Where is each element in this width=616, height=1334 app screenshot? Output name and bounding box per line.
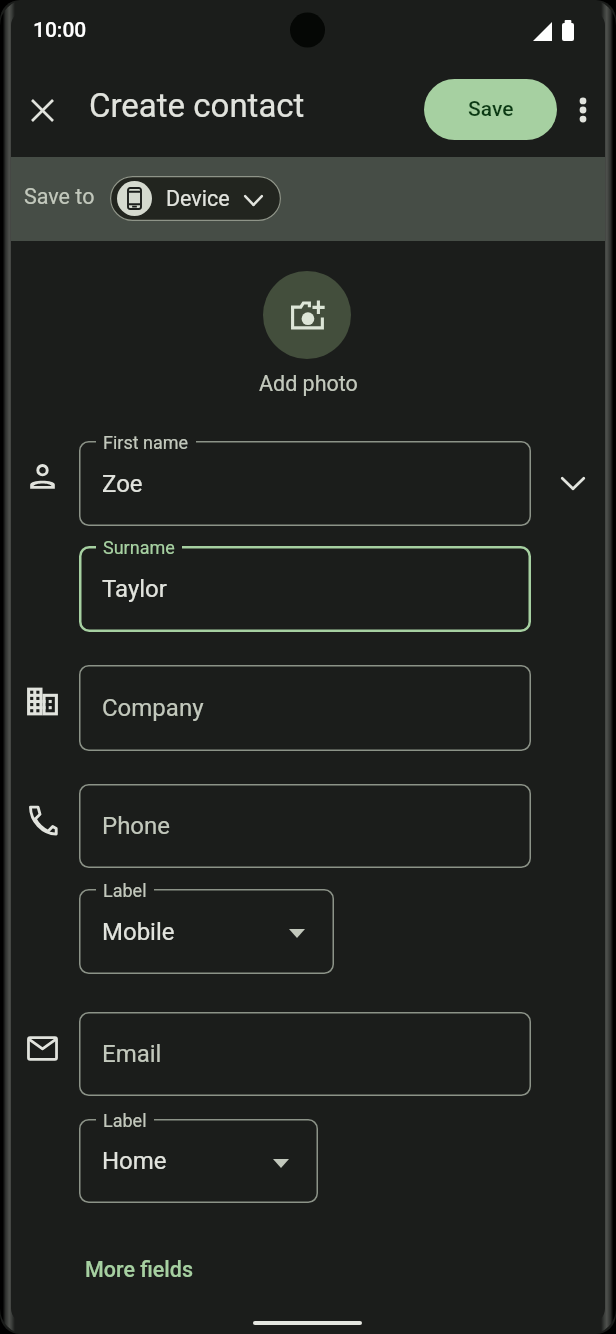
button[interactable]: Label [79, 889, 334, 974]
staticText: Mobile [102, 918, 175, 946]
button[interactable]: More options [559, 86, 607, 134]
staticText: Save to [24, 184, 95, 209]
staticText: Zoe [102, 470, 143, 498]
staticText: Home [102, 1147, 167, 1175]
staticText: Add photo [259, 371, 358, 396]
button[interactable]: Save [424, 79, 557, 140]
staticText: Surname [103, 537, 175, 558]
button[interactable]: First name [79, 441, 531, 526]
staticText: First name [103, 432, 189, 453]
button[interactable]: Company [79, 665, 531, 751]
staticText: Device [166, 186, 230, 211]
staticText: Company [102, 694, 204, 722]
staticText: Label [103, 1110, 147, 1131]
button[interactable]: Phone [79, 784, 531, 868]
staticText: More fields [85, 1257, 194, 1282]
button[interactable]: Email [79, 1012, 531, 1096]
button[interactable]: Close [18, 86, 66, 134]
button[interactable]: Surname [79, 546, 531, 632]
button[interactable]: Label [79, 1119, 318, 1203]
staticText: Taylor [102, 575, 167, 603]
staticText: Phone [102, 812, 171, 840]
staticText: Email [102, 1040, 162, 1068]
staticText: Label [103, 880, 147, 901]
staticText: Save [468, 97, 514, 122]
staticText: Create contact [89, 86, 305, 125]
button[interactable]: More fields [79, 1252, 200, 1287]
button[interactable]: Expand name fields [549, 459, 597, 507]
staticText: 10:00 [33, 18, 87, 43]
button[interactable]: Device [110, 176, 281, 221]
button[interactable]: Add photo [263, 271, 351, 359]
